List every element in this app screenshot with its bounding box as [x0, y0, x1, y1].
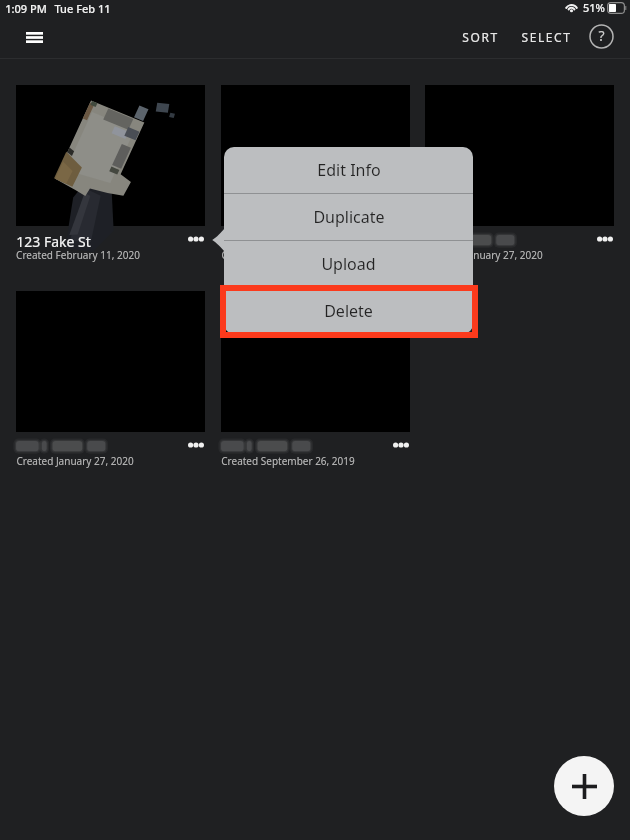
staticText: Created January 27, 2020	[425, 248, 543, 262]
button[interactable]: Open navigation menu	[20, 19, 48, 55]
button[interactable]: Delete	[224, 288, 473, 334]
staticText: Delete	[324, 300, 373, 322]
staticText: Edit Info	[317, 159, 381, 181]
staticText: Tue Feb 11	[54, 1, 111, 16]
staticText: 1:09 PM	[5, 1, 47, 16]
button[interactable]: SORT	[456, 19, 504, 55]
button[interactable]: Created September 26, 2019	[221, 291, 410, 497]
button[interactable]: Created January 27, 2020	[221, 85, 410, 291]
button[interactable]: Help	[587, 23, 616, 49]
staticText: Created January 27, 2020	[16, 454, 134, 468]
staticText: 51%	[583, 0, 605, 15]
staticText: Created September 26, 2019	[221, 454, 355, 468]
staticText: 123 Fake St	[16, 232, 91, 251]
button[interactable]: More options	[181, 227, 210, 251]
button[interactable]: Edit Info	[224, 147, 473, 193]
button[interactable]: More options	[386, 433, 415, 457]
button[interactable]: Created January 27, 2020	[425, 85, 614, 291]
button[interactable]: Duplicate	[224, 194, 473, 240]
staticText: SELECT	[521, 29, 572, 45]
staticText: Created January 27, 2020	[221, 248, 339, 262]
button[interactable]: More options	[386, 227, 415, 251]
staticText: Created February 11, 2020	[16, 248, 140, 262]
button[interactable]: SELECT	[512, 19, 580, 55]
staticText: ?	[598, 26, 605, 45]
button[interactable]: Created January 27, 2020	[16, 291, 205, 497]
button[interactable]: More options	[181, 433, 210, 457]
button[interactable]: More options	[590, 227, 619, 251]
staticText: Upload	[321, 253, 376, 275]
button[interactable]: Add	[554, 756, 614, 816]
staticText: Duplicate	[313, 206, 385, 228]
staticText: SORT	[462, 29, 499, 45]
button[interactable]: Upload	[224, 241, 473, 287]
button[interactable]: 123 Fake St	[16, 85, 205, 291]
